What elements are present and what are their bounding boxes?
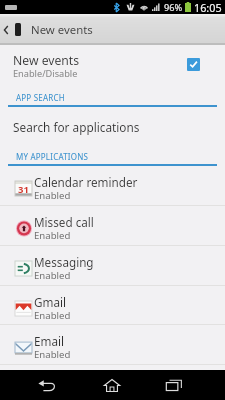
- button[interactable]: Gmail: [0, 286, 225, 324]
- button[interactable]: Search for applications: [0, 107, 225, 143]
- staticText: Enabled: [34, 309, 71, 322]
- staticText: New events: [13, 52, 80, 69]
- button[interactable]: Email: [0, 325, 225, 364]
- staticText: Enabled: [34, 229, 71, 242]
- staticText: 31: [18, 183, 29, 196]
- staticText: Enable/Disable: [13, 67, 78, 80]
- staticText: Email: [34, 333, 65, 349]
- staticText: 96%: [164, 1, 183, 14]
- button[interactable]: Back: [23, 370, 71, 400]
- staticText: 16:05: [194, 0, 222, 14]
- button[interactable]: Messaging: [0, 246, 225, 285]
- staticText: Calendar reminder: [34, 174, 138, 190]
- staticText: Enabled: [34, 348, 71, 361]
- button[interactable]: Home: [88, 370, 136, 400]
- staticText: Missed call: [34, 214, 94, 230]
- staticText: MY APPLICATIONS: [16, 151, 89, 162]
- staticText: Search for applications: [13, 119, 140, 135]
- button[interactable]: Recent apps: [150, 370, 198, 400]
- staticText: Messaging: [34, 254, 94, 270]
- button[interactable]: 31: [0, 166, 225, 205]
- staticText: Enabled: [34, 269, 71, 282]
- staticText: Enabled: [34, 189, 71, 202]
- button[interactable]: New events: [0, 45, 225, 86]
- button[interactable]: Missed call: [0, 206, 225, 245]
- staticText: Gmail: [34, 294, 67, 310]
- staticText: APP SEARCH: [16, 92, 65, 103]
- button[interactable]: Back: [0, 15, 11, 45]
- staticText: New events: [31, 22, 93, 38]
